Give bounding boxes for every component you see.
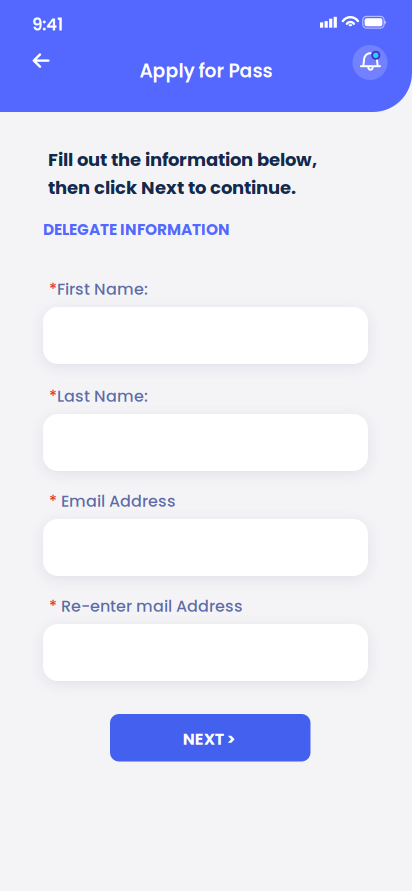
staticText: Re-enter mail Address (57, 595, 243, 617)
staticText: Last Name: (57, 385, 148, 407)
button[interactable]: Notifications (352, 45, 387, 80)
staticText: First Name: (57, 278, 148, 300)
button[interactable]: Back (21, 40, 63, 82)
staticText: * (49, 385, 57, 407)
staticText: NEXT > (183, 728, 236, 750)
staticText: Email Address (57, 490, 176, 512)
staticText: DELEGATE INFORMATION (43, 219, 230, 240)
staticText: * (49, 595, 57, 617)
staticText: 9:41 (32, 13, 63, 36)
staticText: * (49, 278, 57, 300)
button[interactable]: NEXT > (110, 714, 310, 761)
staticText: * (49, 490, 57, 512)
staticText: then click Next to continue. (48, 175, 296, 200)
staticText: Fill out the information below, (48, 147, 317, 172)
staticText: Apply for Pass (139, 58, 272, 84)
